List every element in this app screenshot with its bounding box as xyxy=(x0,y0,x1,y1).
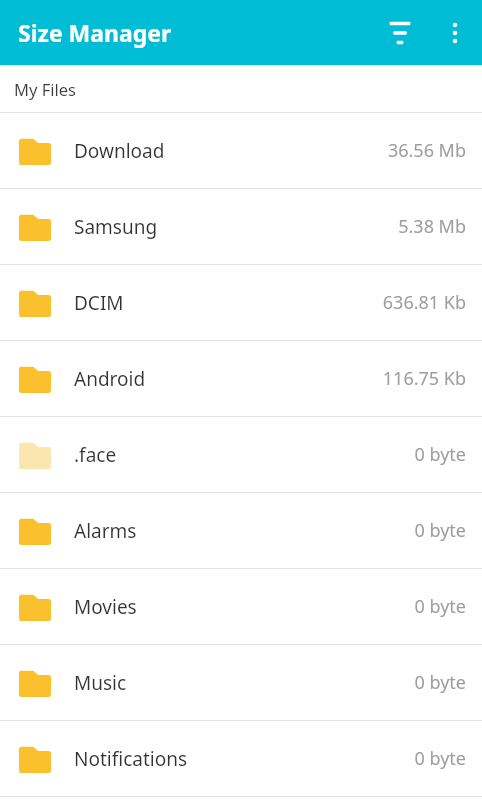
button[interactable]: More options xyxy=(431,9,479,57)
staticText: .face xyxy=(74,442,117,468)
staticText: 5.38 Mb xyxy=(398,214,466,239)
button[interactable]: Sort xyxy=(376,9,424,57)
staticText: 116.75 Kb xyxy=(382,366,466,391)
button[interactable]: Download xyxy=(0,113,482,188)
staticText: My Files xyxy=(14,78,76,100)
staticText: Movies xyxy=(74,594,137,620)
button[interactable]: Notifications xyxy=(0,721,482,796)
staticText: Music xyxy=(74,670,127,696)
staticText: DCIM xyxy=(74,290,124,316)
button[interactable]: Alarms xyxy=(0,493,482,568)
button[interactable]: Android xyxy=(0,341,482,416)
button[interactable]: .face xyxy=(0,417,482,492)
button[interactable]: My Files xyxy=(0,65,482,112)
staticText: 0 byte xyxy=(414,746,466,771)
staticText: 36.56 Mb xyxy=(387,138,466,163)
button[interactable]: Samsung xyxy=(0,189,482,264)
staticText: Android xyxy=(74,366,146,392)
staticText: 0 byte xyxy=(414,442,466,467)
staticText: Alarms xyxy=(74,518,137,544)
button[interactable]: Music xyxy=(0,645,482,720)
button[interactable]: DCIM xyxy=(0,265,482,340)
staticText: Download xyxy=(74,138,165,164)
staticText: 636.81 Kb xyxy=(382,290,466,315)
staticText: 0 byte xyxy=(414,670,466,695)
staticText: Size Manager xyxy=(18,17,172,48)
staticText: Samsung xyxy=(74,214,158,240)
staticText: 0 byte xyxy=(414,518,466,543)
button[interactable]: Movies xyxy=(0,569,482,644)
staticText: 0 byte xyxy=(414,594,466,619)
staticText: Notifications xyxy=(74,746,188,772)
